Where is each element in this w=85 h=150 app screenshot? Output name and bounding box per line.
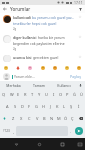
button[interactable]: D — [19, 100, 26, 112]
staticText: M — [57, 116, 61, 121]
button[interactable]: Home — [28, 138, 51, 150]
staticText: ?123 — [3, 129, 10, 133]
button[interactable]: Back — [4, 138, 28, 150]
staticText: J — [50, 104, 52, 109]
staticText: Yorum ekle... — [14, 74, 35, 79]
button[interactable]: I — [50, 89, 57, 100]
button[interactable]: Emoji — [76, 65, 82, 71]
button[interactable]: G — [33, 100, 40, 112]
staticText: Tamam — [33, 83, 45, 88]
button[interactable]: C — [25, 112, 33, 124]
button[interactable]: U — [43, 89, 50, 100]
staticText: ucuncu kisi — [13, 55, 32, 60]
button[interactable]: Voice input — [76, 81, 85, 89]
button[interactable]: Comma — [11, 124, 16, 138]
button[interactable]: A — [3, 100, 11, 112]
staticText: Y — [38, 92, 41, 97]
button[interactable]: Emoji — [27, 65, 33, 71]
button[interactable]: Backspace — [76, 112, 85, 124]
button[interactable]: Paylaş — [69, 74, 82, 79]
staticText: diger kullanici — [13, 35, 37, 40]
staticText: U — [45, 92, 48, 97]
button[interactable]: E — [15, 89, 22, 100]
button[interactable]: Y — [36, 89, 43, 100]
button[interactable]: kullanicadi — [0, 13, 85, 33]
button[interactable]: L — [61, 100, 68, 112]
button[interactable]: Emoji — [40, 65, 46, 71]
staticText: kullanicadi — [13, 15, 31, 20]
button[interactable]: V — [33, 112, 41, 124]
button[interactable]: M — [55, 112, 62, 124]
button[interactable]: Like — [78, 35, 82, 39]
staticText: W — [10, 92, 14, 97]
button[interactable]: K — [54, 100, 61, 112]
staticText: harika bir yorum — [38, 35, 65, 40]
button[interactable]: Q — [0, 89, 8, 100]
staticText: P — [66, 92, 69, 97]
button[interactable]: Emoji — [15, 65, 21, 71]
staticText: Ö — [64, 116, 68, 121]
button[interactable]: Recent apps — [51, 138, 74, 150]
button[interactable]: W — [8, 89, 15, 100]
staticText: O — [59, 92, 63, 97]
button[interactable]: T — [29, 89, 36, 100]
button[interactable]: P — [64, 89, 71, 100]
button[interactable]: Ğ — [71, 89, 78, 100]
staticText: bu yorumu cok guzel yazmis — [32, 15, 77, 20]
button[interactable]: diger kullanici — [0, 33, 85, 53]
button[interactable]: Back — [2, 6, 8, 12]
button[interactable]: Filter — [77, 6, 83, 12]
button[interactable]: Ü — [78, 89, 85, 100]
staticText: 2g — [13, 47, 17, 51]
button[interactable]: Z — [9, 112, 17, 124]
button[interactable]: Kullanıcı — [51, 81, 76, 89]
button[interactable]: Send — [73, 124, 84, 138]
staticText: N — [50, 116, 54, 121]
button[interactable]: İ — [75, 100, 82, 112]
staticText: İ — [78, 104, 80, 109]
staticText: Q — [2, 92, 6, 97]
staticText: Z — [12, 116, 15, 121]
button[interactable]: Emoji — [3, 65, 9, 71]
staticText: , — [13, 129, 15, 134]
staticText: Yorumlar — [10, 6, 31, 12]
button[interactable]: ucuncu kisi — [0, 53, 85, 64]
button[interactable]: H — [40, 100, 47, 112]
button[interactable]: Emoji — [64, 65, 70, 71]
staticText: Ş — [70, 104, 73, 109]
button[interactable]: Merhaba — [0, 81, 26, 89]
staticText: tesekkurler hepsi cok guzel — [13, 21, 57, 26]
button[interactable]: Hide keyboard — [74, 138, 85, 150]
staticText: Paylaş — [70, 74, 81, 79]
button[interactable]: Like — [78, 55, 82, 59]
staticText: F — [28, 104, 31, 109]
staticText: S — [14, 104, 17, 109]
staticText: Kullanıcı — [57, 83, 71, 88]
button[interactable]: S — [11, 100, 19, 112]
button[interactable]: Like — [78, 15, 82, 19]
button[interactable]: Ö — [62, 112, 69, 124]
button[interactable]: Tamam — [26, 81, 51, 89]
button[interactable]: Emoji — [52, 65, 58, 71]
button[interactable]: F — [26, 100, 33, 112]
staticText: B — [43, 116, 46, 121]
staticText: A — [6, 104, 9, 109]
button[interactable]: B — [41, 112, 48, 124]
staticText: Ğ — [73, 92, 76, 97]
button[interactable]: X — [17, 112, 25, 124]
staticText: 17:11 — [74, 0, 83, 5]
button[interactable]: R — [22, 89, 29, 100]
button[interactable]: N — [48, 112, 55, 124]
button[interactable]: Yorum ekle... — [12, 73, 69, 80]
button[interactable]: Ç — [69, 112, 76, 124]
button[interactable]: ?123 — [1, 124, 11, 138]
button[interactable]: O — [57, 89, 64, 100]
staticText: R — [24, 92, 27, 97]
button[interactable]: Ş — [68, 100, 75, 112]
button[interactable]: J — [47, 100, 54, 112]
button[interactable]: Shift — [0, 112, 9, 124]
staticText: . — [70, 129, 72, 134]
